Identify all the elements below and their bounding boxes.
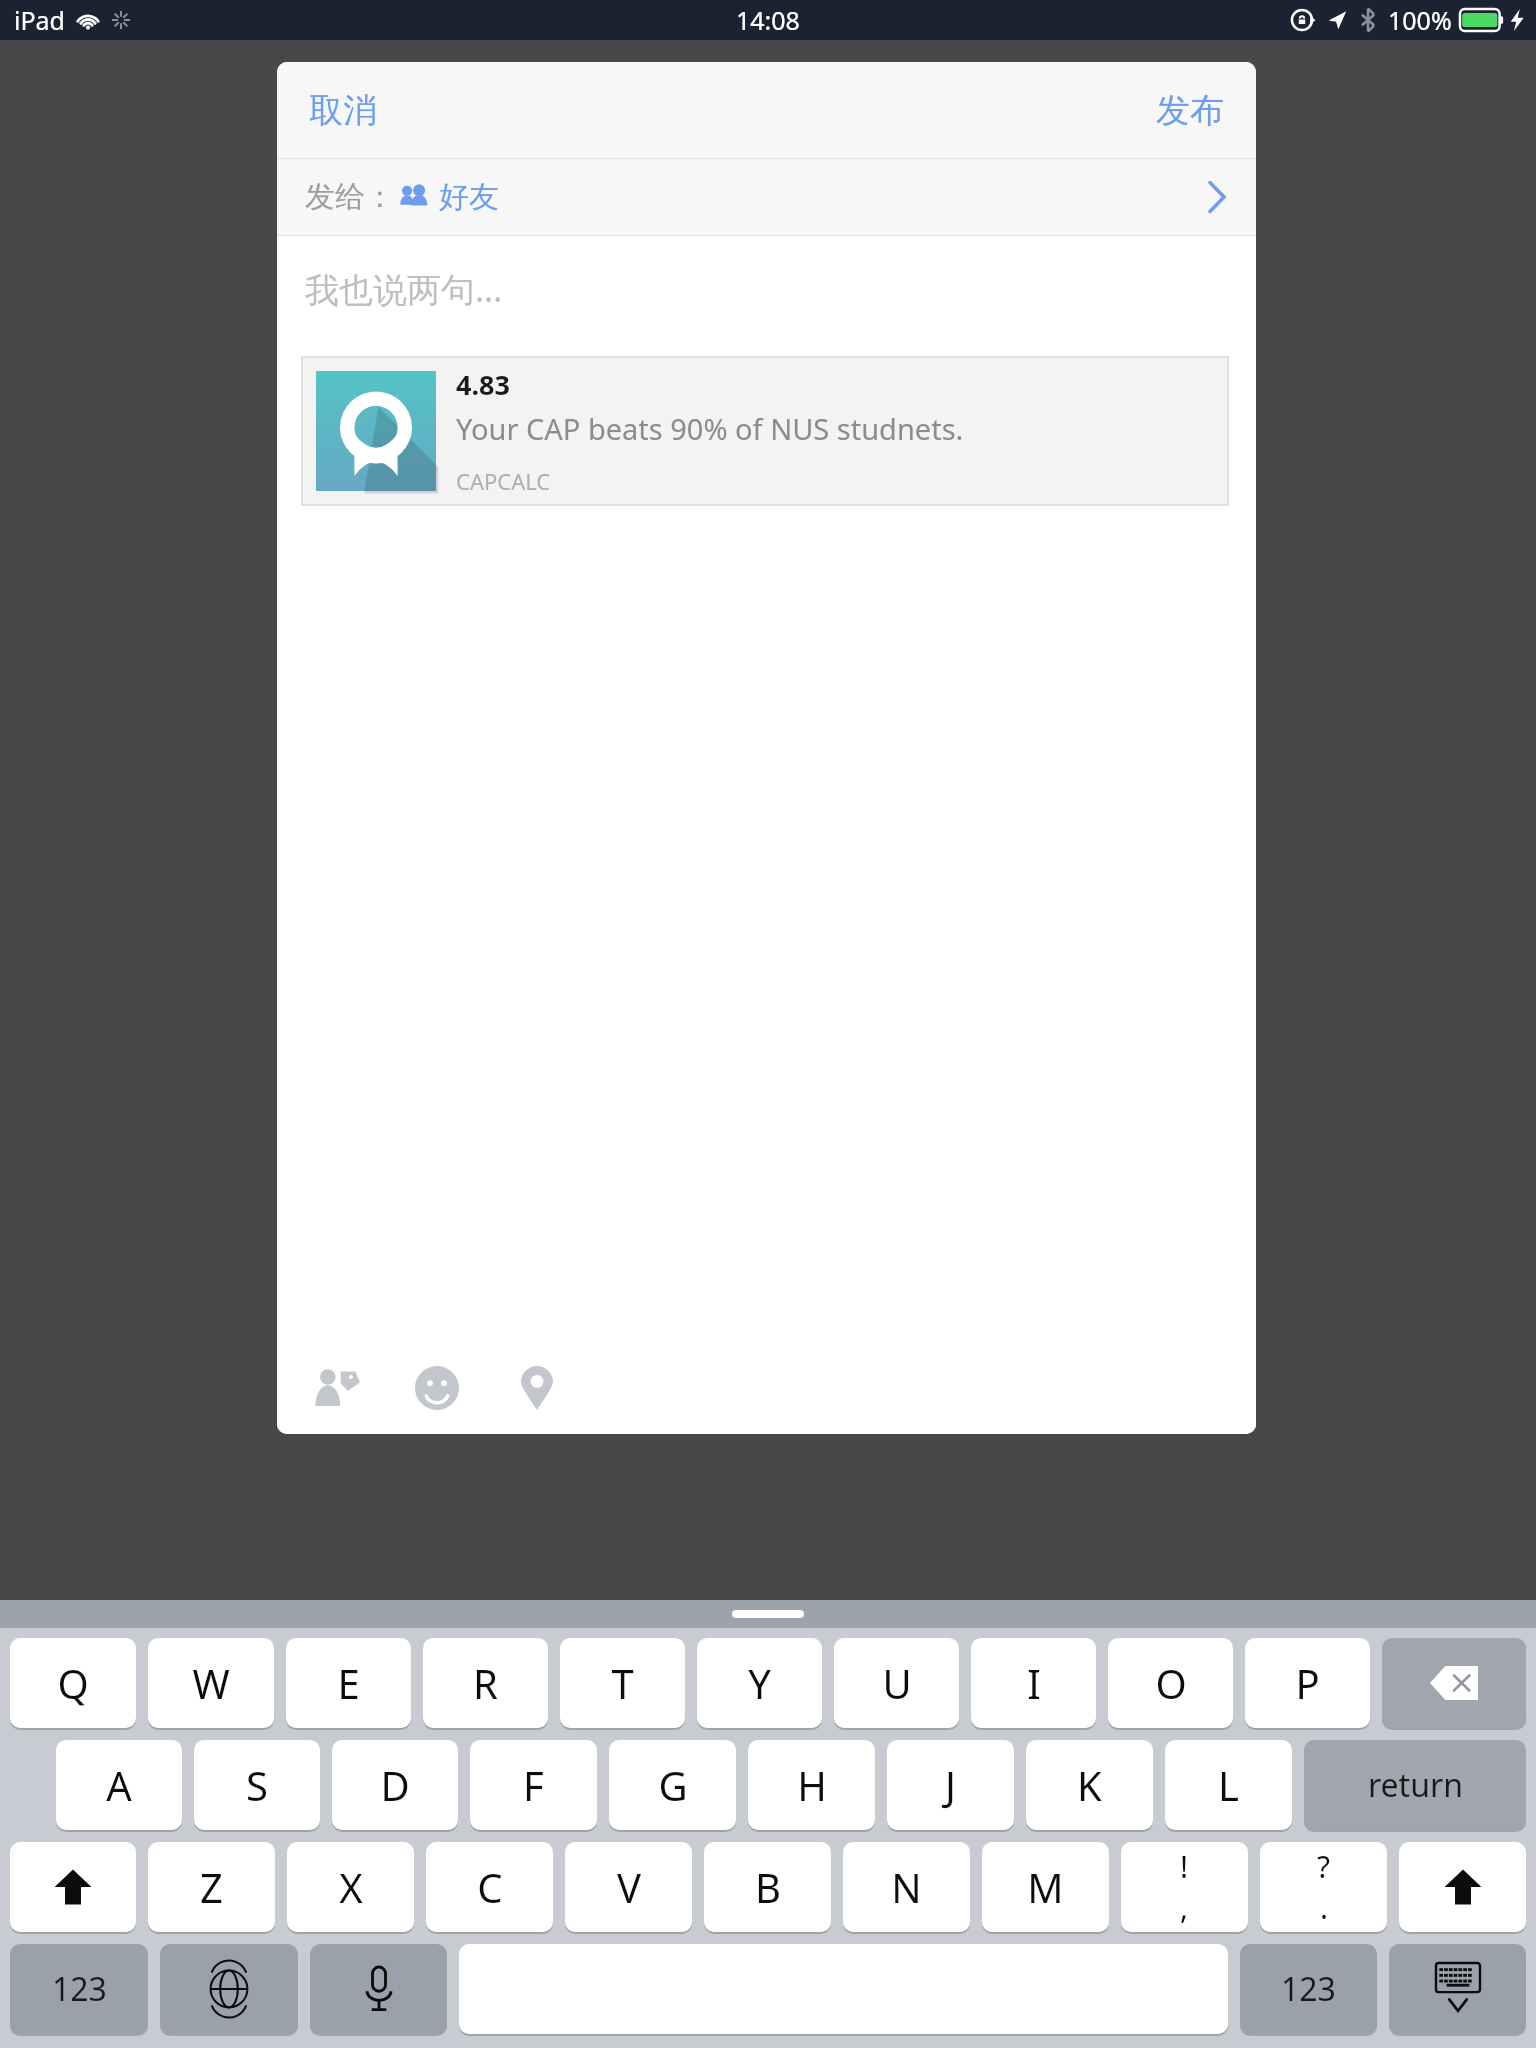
staticText: 取消 [309, 89, 377, 132]
button[interactable]: Y [697, 1638, 822, 1728]
staticText: J [945, 1758, 956, 1812]
button[interactable]: L [1165, 1740, 1292, 1830]
button[interactable]: I [971, 1638, 1096, 1728]
button[interactable]: Location [501, 1352, 573, 1424]
button[interactable]: J [887, 1740, 1014, 1830]
staticText: S [246, 1758, 268, 1812]
button[interactable]: 123 [10, 1944, 148, 2034]
button[interactable] [1382, 1638, 1526, 1728]
staticText: R [473, 1656, 498, 1710]
staticText: V [617, 1860, 641, 1914]
staticText: Your CAP beats 90% of NUS studnets. [456, 409, 964, 448]
staticText: 好友 [439, 178, 499, 216]
button[interactable]: Dictation [310, 1944, 447, 2034]
button[interactable]: 123 [1240, 1944, 1377, 2034]
staticText: N [891, 1860, 922, 1914]
staticText: , [1180, 1887, 1189, 1928]
button[interactable]: N [843, 1842, 970, 1932]
button[interactable]: Shift [1399, 1842, 1526, 1932]
staticText: Z [200, 1860, 223, 1914]
button[interactable]: S [194, 1740, 320, 1830]
button[interactable]: P [1245, 1638, 1370, 1728]
staticText: I [1027, 1656, 1041, 1710]
button[interactable]: F [470, 1740, 597, 1830]
button[interactable]: R [423, 1638, 548, 1728]
button[interactable]: U [834, 1638, 959, 1728]
staticText: P [1295, 1656, 1320, 1710]
button[interactable]: 发布 [1134, 79, 1246, 142]
button[interactable]: K [1026, 1740, 1153, 1830]
staticText: return [1368, 1763, 1463, 1807]
staticText: 发布 [1156, 89, 1224, 132]
button[interactable]: Mention friend [301, 1352, 373, 1424]
button[interactable]: B [704, 1842, 831, 1932]
staticText: Q [57, 1656, 89, 1710]
button[interactable]: X [287, 1842, 414, 1932]
staticText: Y [748, 1656, 771, 1710]
staticText: 4.83 [456, 366, 510, 403]
button[interactable]: T [560, 1638, 685, 1728]
button[interactable]: V [565, 1842, 692, 1932]
button[interactable]: 取消 [287, 79, 399, 142]
button[interactable]: A [56, 1740, 182, 1830]
button[interactable]: Emoji [401, 1352, 473, 1424]
staticText: X [339, 1860, 363, 1914]
staticText: 123 [52, 1967, 107, 2011]
staticText: ! [1180, 1846, 1189, 1887]
staticText: 14:08 [736, 3, 800, 37]
button[interactable]: return [1304, 1740, 1526, 1830]
button[interactable]: Change language [160, 1944, 298, 2034]
button[interactable]: H [748, 1740, 875, 1830]
button[interactable]: Shift [10, 1842, 136, 1932]
staticText: 100% [1388, 3, 1452, 37]
staticText: 我也说两句... [305, 266, 503, 312]
staticText: M [1027, 1860, 1064, 1914]
staticText: K [1077, 1758, 1102, 1812]
staticText: U [882, 1656, 912, 1710]
button[interactable]: 发给： [277, 159, 1256, 235]
button[interactable]: W [148, 1638, 274, 1728]
staticText: A [106, 1758, 132, 1812]
button[interactable]: Q [10, 1638, 136, 1728]
button[interactable]: O [1108, 1638, 1233, 1728]
button[interactable]: D [332, 1740, 458, 1830]
staticText: 123 [1281, 1967, 1336, 2011]
button[interactable]: M [982, 1842, 1109, 1932]
staticText: iPad [14, 3, 65, 37]
button[interactable]: C [426, 1842, 553, 1932]
staticText: ? [1317, 1846, 1331, 1887]
staticText: F [523, 1758, 544, 1812]
button[interactable]: ? [1260, 1842, 1387, 1932]
staticText: O [1155, 1656, 1187, 1710]
staticText: L [1218, 1758, 1239, 1812]
button[interactable]: Keyboard handle [732, 1610, 804, 1618]
button[interactable]: ! [1121, 1842, 1248, 1932]
staticText: W [192, 1656, 230, 1710]
staticText: E [337, 1656, 360, 1710]
button[interactable]: 4.83 [302, 357, 1228, 505]
button[interactable]: Hide keyboard [1389, 1944, 1526, 2034]
staticText: H [797, 1758, 827, 1812]
staticText: G [658, 1758, 688, 1812]
button[interactable]: E [286, 1638, 411, 1728]
staticText: CAPCALC [456, 466, 551, 496]
staticText: C [477, 1860, 503, 1914]
staticText: 发给： [305, 178, 395, 216]
button[interactable]: G [609, 1740, 736, 1830]
staticText: D [380, 1758, 410, 1812]
staticText: B [755, 1860, 781, 1914]
staticText: . [1320, 1887, 1329, 1928]
staticText: T [611, 1656, 634, 1710]
button[interactable]: Z [148, 1842, 275, 1932]
